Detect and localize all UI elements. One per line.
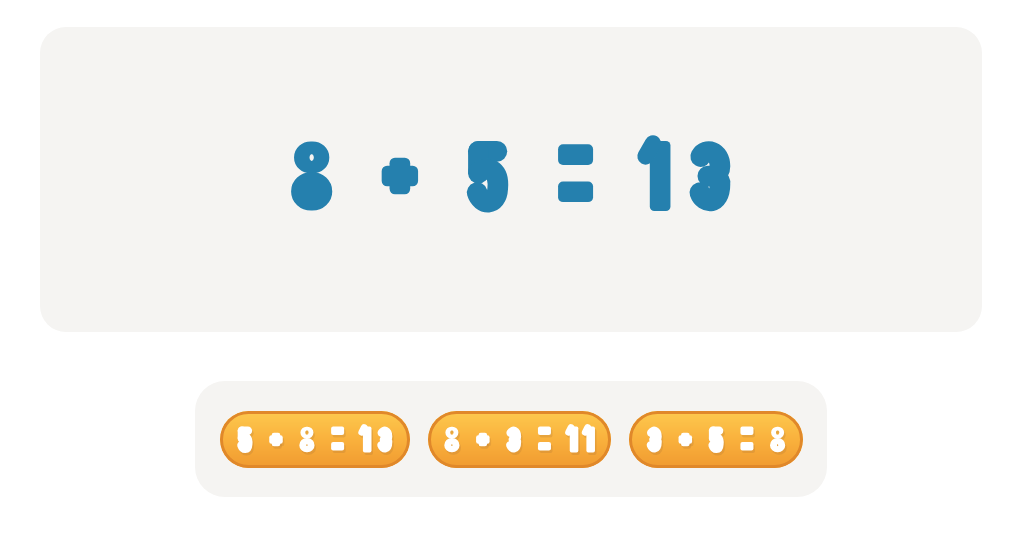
button[interactable] — [428, 411, 611, 468]
button[interactable] — [220, 411, 410, 468]
button[interactable] — [629, 411, 803, 468]
